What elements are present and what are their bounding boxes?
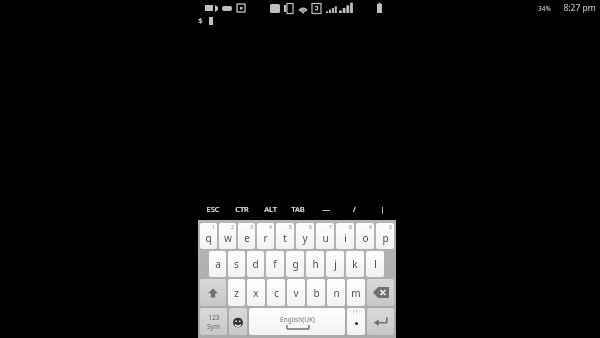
staticText: 4 <box>269 224 272 231</box>
staticText: e <box>244 231 250 245</box>
staticText: p <box>382 231 389 245</box>
button[interactable]: 0 <box>376 223 394 249</box>
button[interactable]: | <box>368 198 396 220</box>
button[interactable]: m <box>347 279 365 306</box>
staticText: | <box>380 204 385 214</box>
button[interactable]: 5 <box>276 223 294 249</box>
button[interactable]: 9 <box>356 223 374 249</box>
button[interactable]: 4 <box>257 223 274 249</box>
staticText: 3 <box>250 224 253 231</box>
staticText: y <box>302 231 308 245</box>
staticText: 123 <box>208 313 220 322</box>
button[interactable]: ! ? : <box>347 308 365 335</box>
staticText: $ <box>198 15 203 25</box>
staticText: g <box>292 257 299 271</box>
staticText: a <box>215 257 221 271</box>
button[interactable]: ESC <box>198 198 227 220</box>
staticText: 6 <box>309 224 312 231</box>
staticText: o <box>362 231 369 245</box>
staticText: z <box>234 286 239 300</box>
button[interactable]: s <box>228 251 245 277</box>
button[interactable]: Symbols <box>200 308 227 335</box>
staticText: l <box>374 257 377 271</box>
staticText: 8 <box>349 224 352 231</box>
button[interactable]: Enter <box>367 308 394 335</box>
button[interactable]: 3 <box>238 223 255 249</box>
button[interactable]: 8 <box>336 223 354 249</box>
staticText: / <box>353 204 356 214</box>
button[interactable]: f <box>266 251 284 277</box>
button[interactable]: 6 <box>296 223 314 249</box>
button[interactable]: k <box>346 251 364 277</box>
button[interactable]: 2 <box>219 223 236 249</box>
staticText: t <box>283 231 287 245</box>
staticText: 7 <box>329 224 332 231</box>
staticText: ESC <box>206 204 220 214</box>
button[interactable]: g <box>286 251 304 277</box>
button[interactable]: ALT <box>256 198 284 220</box>
button[interactable]: j <box>326 251 344 277</box>
staticText: 5 <box>289 224 292 231</box>
staticText: f <box>273 257 277 271</box>
staticText: j <box>334 257 337 271</box>
staticText: ALT <box>264 204 277 214</box>
staticText: c <box>274 286 279 300</box>
staticText: English(UK) <box>280 315 315 324</box>
staticText: 0 <box>389 224 392 231</box>
button[interactable]: v <box>287 279 305 306</box>
staticText: 1 <box>212 224 215 231</box>
button[interactable]: Backspace <box>367 279 394 306</box>
staticText: 34% <box>538 4 551 13</box>
staticText: TAB <box>291 204 305 214</box>
button[interactable]: z <box>228 279 245 306</box>
staticText: m <box>351 286 361 300</box>
staticText: q <box>205 231 212 245</box>
staticText: 2 <box>231 224 234 231</box>
button[interactable]: l <box>366 251 384 277</box>
button[interactable]: a <box>209 251 226 277</box>
staticText: — <box>322 204 330 214</box>
staticText: d <box>252 257 259 271</box>
staticText: s <box>234 257 239 271</box>
button[interactable]: x <box>247 279 265 306</box>
button[interactable]: n <box>327 279 345 306</box>
staticText: w <box>224 231 232 245</box>
staticText: CTR <box>235 204 249 214</box>
staticText: v <box>293 286 299 300</box>
button[interactable]: Shift <box>200 279 226 306</box>
button[interactable]: h <box>306 251 324 277</box>
button[interactable]: Space <box>249 308 345 335</box>
staticText: h <box>312 257 319 271</box>
staticText: x <box>253 286 259 300</box>
staticText: b <box>313 286 320 300</box>
button[interactable]: — <box>312 198 340 220</box>
staticText: 8:27 pm <box>563 2 596 14</box>
staticText: ! ? : <box>353 309 360 315</box>
staticText: Sym <box>207 322 220 331</box>
staticText: k <box>352 257 358 271</box>
staticText: r <box>263 231 268 245</box>
staticText: i <box>344 231 347 245</box>
button[interactable]: CTR <box>227 198 256 220</box>
button[interactable]: TAB <box>284 198 312 220</box>
button[interactable]: 7 <box>316 223 334 249</box>
staticText: u <box>322 231 329 245</box>
button[interactable]: Emoji <box>229 308 247 335</box>
staticText: n <box>333 286 340 300</box>
button[interactable]: c <box>267 279 285 306</box>
button[interactable]: d <box>247 251 264 277</box>
staticText: 9 <box>369 224 372 231</box>
button[interactable]: / <box>340 198 368 220</box>
button[interactable]: b <box>307 279 325 306</box>
button[interactable]: 1 <box>200 223 217 249</box>
